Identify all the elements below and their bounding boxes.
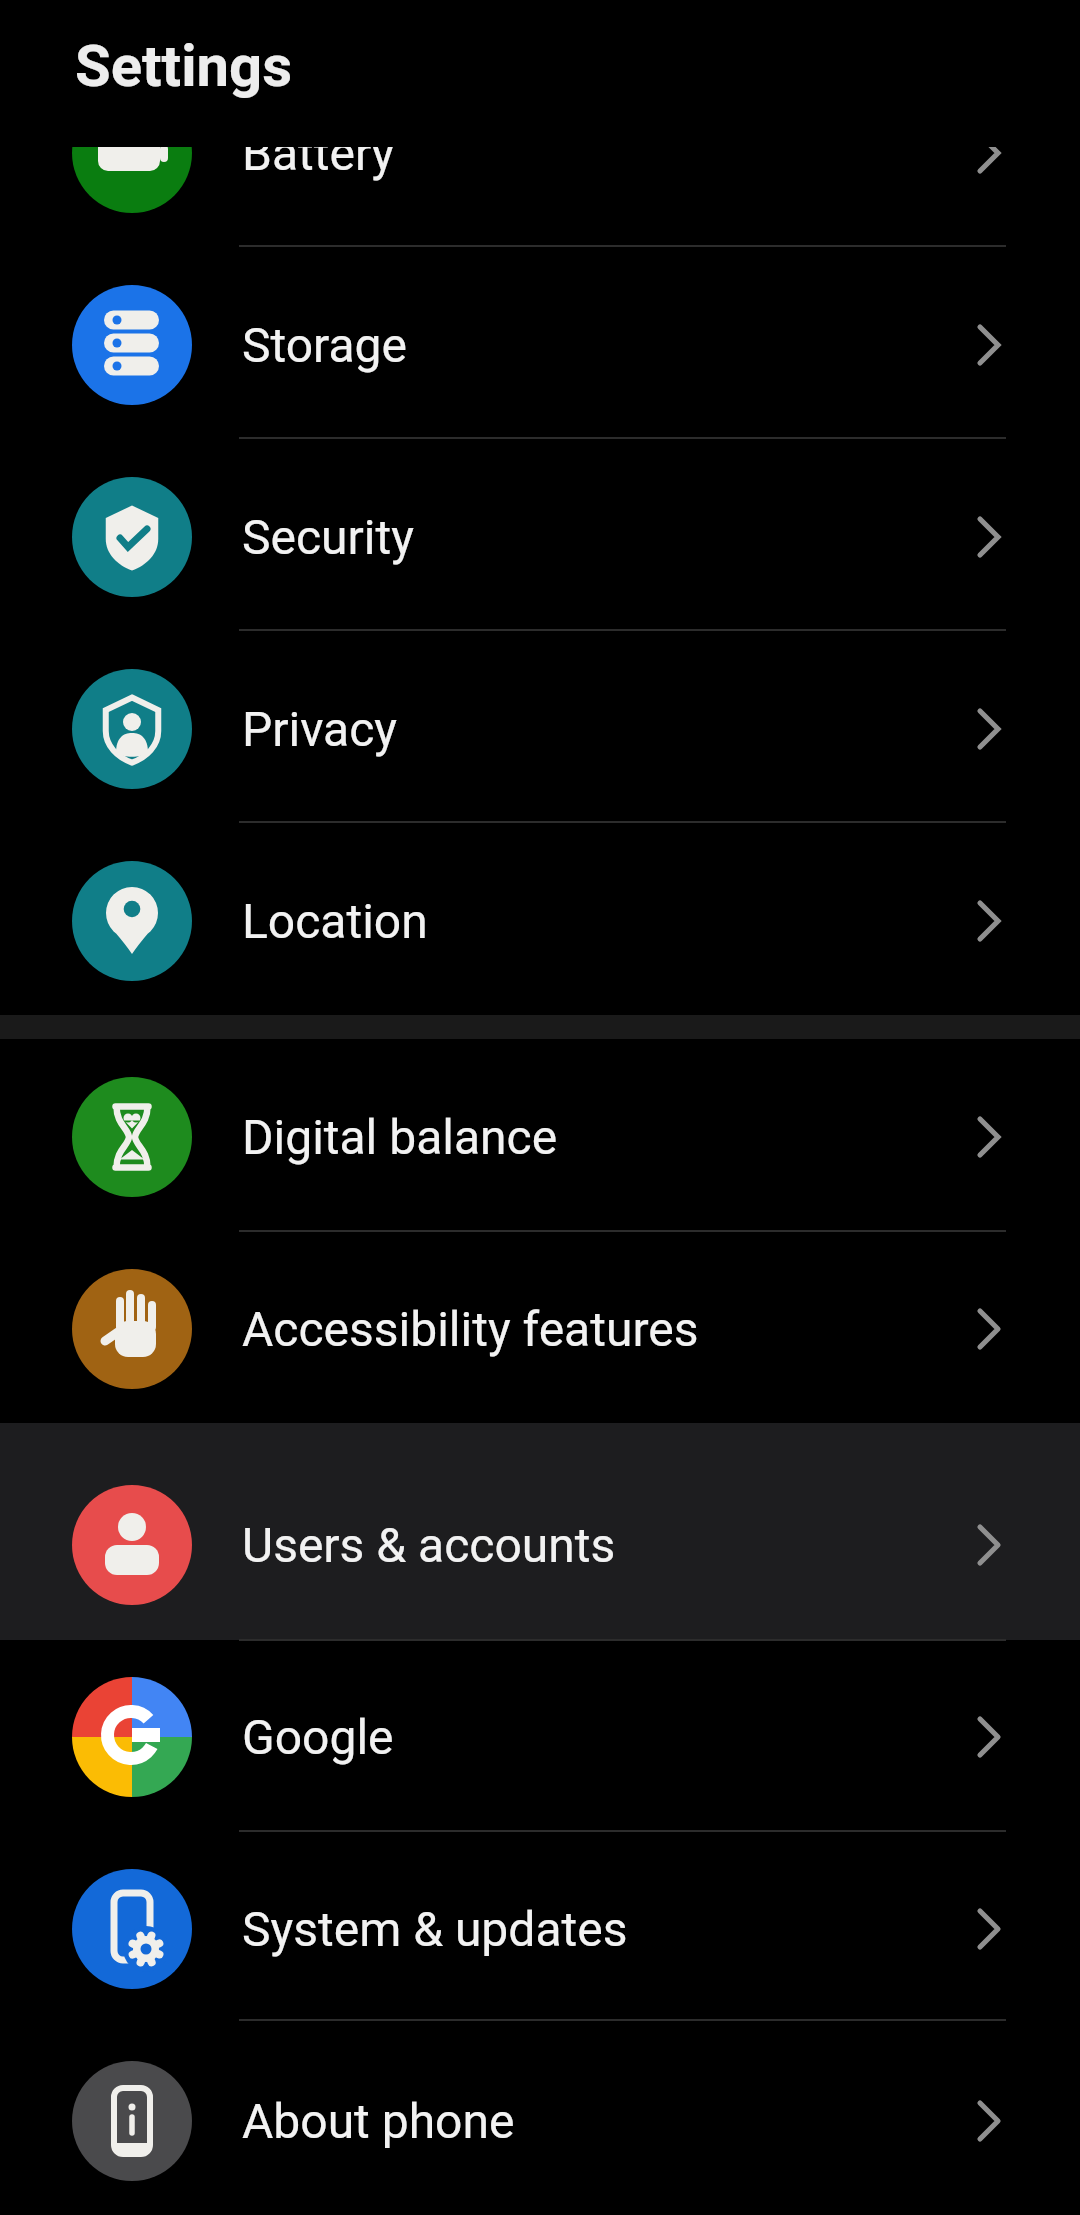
button[interactable]: Google: [0, 1641, 1080, 1833]
button[interactable]: Accessibility features: [0, 1233, 1080, 1425]
staticText: Settings: [75, 32, 293, 100]
staticText: Accessibility features: [242, 1301, 699, 1357]
staticText: Digital balance: [242, 1109, 558, 1165]
staticText: Google: [242, 1709, 394, 1765]
button[interactable]: Security: [0, 441, 1080, 633]
staticText: Storage: [242, 317, 407, 373]
staticText: Security: [242, 509, 414, 565]
staticText: Battery: [242, 125, 395, 181]
staticText: About phone: [242, 2093, 515, 2149]
button[interactable]: Users & accounts: [0, 1449, 1080, 1641]
button[interactable]: About phone: [0, 2025, 1080, 2215]
button[interactable]: Privacy: [0, 633, 1080, 825]
button[interactable]: Digital balance: [0, 1041, 1080, 1233]
staticText: Users & accounts: [242, 1517, 616, 1573]
staticText: System & updates: [242, 1901, 628, 1957]
button[interactable]: Location: [0, 825, 1080, 1017]
button[interactable]: Battery: [0, 57, 1080, 249]
staticText: Location: [242, 893, 428, 949]
button[interactable]: Storage: [0, 249, 1080, 441]
button[interactable]: System & updates: [0, 1833, 1080, 2025]
staticText: Privacy: [242, 701, 398, 757]
